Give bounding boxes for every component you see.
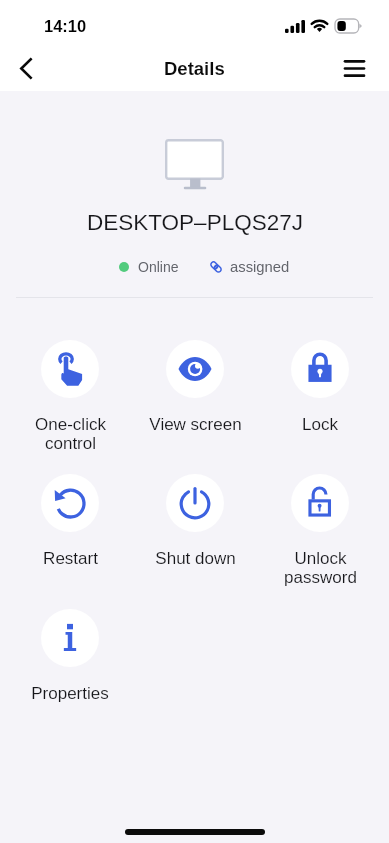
staticText: View screen [149, 415, 242, 434]
staticText: Lock [302, 415, 338, 434]
button[interactable]: assigned [210, 258, 290, 276]
button[interactable]: Unlock password [260, 474, 380, 586]
staticText: One-click control [35, 415, 106, 452]
staticText: Details [164, 58, 225, 79]
button[interactable]: Properties [10, 609, 130, 703]
staticText: Online [138, 259, 179, 275]
button[interactable]: Online [119, 258, 179, 276]
staticText: Shut down [155, 549, 236, 568]
button[interactable]: Menu [334, 48, 375, 89]
button[interactable]: Shut down [135, 474, 255, 568]
staticText: Properties [31, 684, 109, 703]
staticText: Unlock password [284, 549, 357, 586]
button[interactable]: Restart [10, 474, 130, 568]
staticText: assigned [230, 259, 290, 276]
button[interactable]: One-click control [10, 340, 130, 452]
staticText: DESKTOP–PLQS27J [87, 210, 303, 235]
button[interactable]: Back [5, 48, 46, 89]
staticText: 14:10 [44, 17, 87, 35]
button[interactable]: Lock [260, 340, 380, 434]
button[interactable]: View screen [135, 340, 255, 434]
staticText: Restart [43, 549, 98, 568]
